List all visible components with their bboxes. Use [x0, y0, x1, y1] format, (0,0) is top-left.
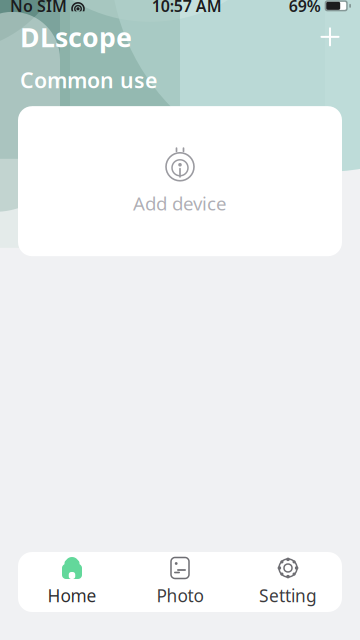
staticText: Photo	[156, 584, 203, 607]
button[interactable]: Setting	[234, 552, 342, 612]
staticText: Home	[47, 584, 96, 607]
staticText: Setting	[259, 584, 317, 607]
button[interactable]: Add device	[308, 17, 352, 57]
staticText: 10:57 AM	[152, 0, 222, 16]
button[interactable]: Home	[18, 552, 126, 612]
staticText: Add device	[133, 191, 227, 216]
button[interactable]: Add device	[18, 106, 342, 256]
staticText: 69%	[289, 0, 321, 16]
staticText: DLscope	[20, 19, 132, 54]
staticText: Common use	[20, 66, 157, 94]
staticText: No SIM	[10, 0, 67, 16]
button[interactable]: Photo	[126, 552, 234, 612]
